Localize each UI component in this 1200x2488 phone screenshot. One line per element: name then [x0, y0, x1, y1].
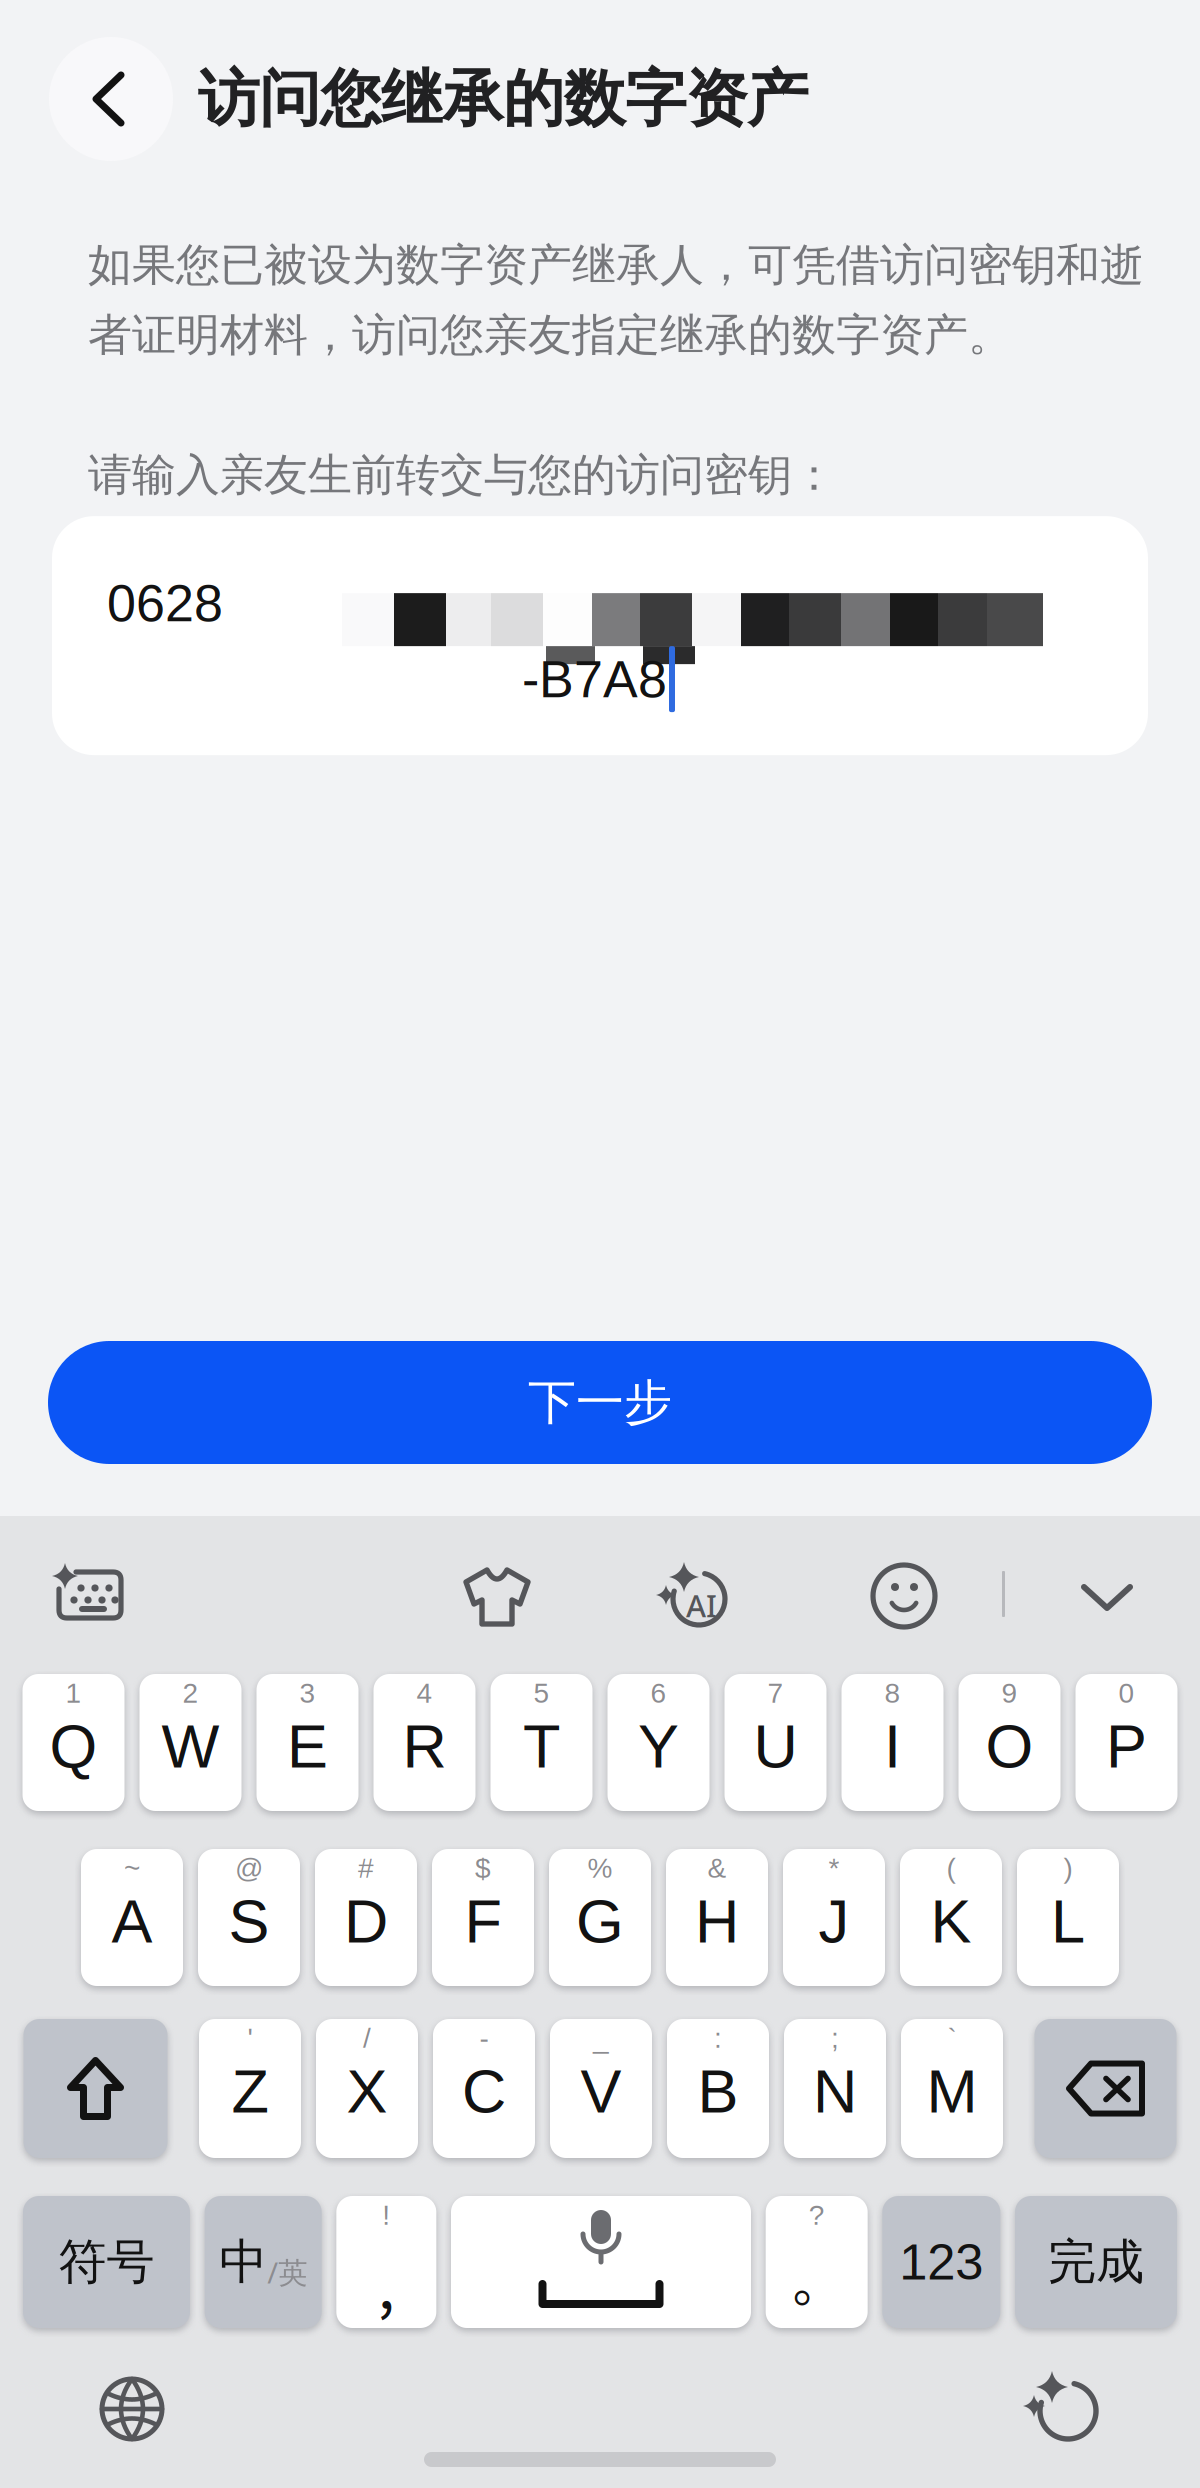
- staticText: !: [382, 2199, 390, 2231]
- button[interactable]: 返回: [49, 37, 173, 161]
- button[interactable]: `: [901, 2019, 1003, 2158]
- staticText: ;: [831, 2022, 839, 2054]
- button[interactable]: %: [549, 1849, 651, 1986]
- staticText: ,: [378, 2238, 395, 2326]
- button[interactable]: #: [315, 1849, 417, 1986]
- staticText: ': [247, 2022, 252, 2054]
- button[interactable]: 中英切换: [205, 2196, 322, 2328]
- staticText: $: [475, 1852, 491, 1884]
- button[interactable]: _: [550, 2019, 652, 2158]
- staticText: Q: [49, 1712, 97, 1780]
- button[interactable]: 8: [841, 1674, 943, 1811]
- staticText: 3: [299, 1677, 315, 1709]
- button[interactable]: 皮肤: [459, 1563, 535, 1629]
- button[interactable]: 4: [373, 1674, 475, 1811]
- staticText: 4: [416, 1677, 432, 1709]
- button[interactable]: !: [336, 2196, 436, 2328]
- staticText: ): [1063, 1852, 1072, 1884]
- button[interactable]: ): [1017, 1849, 1119, 1986]
- button[interactable]: ~: [81, 1849, 183, 1986]
- button[interactable]: 7: [724, 1674, 826, 1811]
- staticText: AI: [686, 1585, 717, 1626]
- button[interactable]: AI 助手: [1026, 2373, 1104, 2445]
- button[interactable]: *: [783, 1849, 885, 1986]
- button[interactable]: 收起键盘: [1074, 1563, 1140, 1625]
- button[interactable]: ;: [784, 2019, 886, 2158]
- staticText: Y: [638, 1712, 679, 1780]
- staticText: ?: [809, 2199, 825, 2231]
- staticText: K: [930, 1887, 971, 1955]
- staticText: 8: [884, 1677, 900, 1709]
- button[interactable]: 下一步: [48, 1341, 1152, 1464]
- staticText: 访问您继承的数字资产: [198, 61, 808, 137]
- staticText: F: [464, 1887, 501, 1955]
- staticText: 符号: [58, 2232, 154, 2291]
- staticText: A: [111, 1887, 152, 1955]
- button[interactable]: 6: [607, 1674, 709, 1811]
- staticText: S: [228, 1887, 269, 1955]
- button[interactable]: 表情: [870, 1563, 938, 1629]
- staticText: R: [402, 1712, 446, 1780]
- staticText: V: [580, 2057, 621, 2125]
- staticText: #: [358, 1852, 374, 1884]
- button[interactable]: /: [316, 2019, 418, 2158]
- button[interactable]: AI 助手: [655, 1563, 735, 1629]
- button[interactable]: 删除: [1034, 2019, 1176, 2158]
- staticText: Z: [231, 2057, 268, 2125]
- staticText: O: [985, 1712, 1033, 1780]
- button[interactable]: 0: [1075, 1674, 1177, 1811]
- button[interactable]: $: [432, 1849, 534, 1986]
- staticText: H: [695, 1887, 739, 1955]
- button[interactable]: (: [900, 1849, 1002, 1986]
- staticText: &: [707, 1852, 726, 1884]
- staticText: ~: [124, 1852, 140, 1884]
- staticText: /: [363, 2022, 371, 2054]
- button[interactable]: 9: [958, 1674, 1060, 1811]
- button[interactable]: 符号: [23, 2196, 190, 2328]
- button[interactable]: &: [666, 1849, 768, 1986]
- staticText: E: [287, 1712, 328, 1780]
- staticText: U: [753, 1712, 797, 1780]
- staticText: X: [346, 2057, 387, 2125]
- staticText: P: [1106, 1712, 1147, 1780]
- staticText: 0: [1118, 1677, 1134, 1709]
- button[interactable]: ?: [766, 2196, 868, 2328]
- button[interactable]: 空格: [451, 2196, 751, 2328]
- button[interactable]: Shift: [23, 2019, 167, 2158]
- staticText: 7: [767, 1677, 783, 1709]
- staticText: L: [1051, 1887, 1085, 1955]
- button[interactable]: @: [198, 1849, 300, 1986]
- staticText: G: [576, 1887, 624, 1955]
- staticText: 5: [533, 1677, 549, 1709]
- button[interactable]: :: [667, 2019, 769, 2158]
- button[interactable]: ': [199, 2019, 301, 2158]
- button[interactable]: 切换输入法: [96, 2373, 168, 2445]
- button[interactable]: 完成: [1015, 2196, 1177, 2328]
- button[interactable]: 2: [139, 1674, 241, 1811]
- button[interactable]: 访问密钥输入框: [52, 516, 1148, 755]
- staticText: W: [161, 1712, 219, 1780]
- button[interactable]: 1: [22, 1674, 124, 1811]
- staticText: -B7A8: [522, 650, 667, 708]
- staticText: 6: [650, 1677, 666, 1709]
- staticText: 如果您已被设为数字资产继承人，可凭借访问密钥和逝者证明材料，访问您亲友指定继承的…: [88, 238, 1144, 362]
- staticText: 2: [182, 1677, 198, 1709]
- staticText: J: [818, 1887, 849, 1955]
- staticText: :: [714, 2022, 722, 2054]
- button[interactable]: 3: [256, 1674, 358, 1811]
- staticText: N: [813, 2057, 857, 2125]
- button[interactable]: 5: [490, 1674, 592, 1811]
- staticText: D: [344, 1887, 388, 1955]
- button[interactable]: 123: [882, 2196, 1000, 2328]
- staticText: `: [947, 2022, 956, 2054]
- staticText: 9: [1001, 1677, 1017, 1709]
- staticText: %: [587, 1852, 612, 1884]
- button[interactable]: -: [433, 2019, 535, 2158]
- staticText: 中: [219, 2232, 267, 2291]
- staticText: /英: [267, 2252, 307, 2291]
- staticText: _: [593, 2022, 609, 2054]
- button[interactable]: AI 键盘: [51, 1563, 129, 1625]
- staticText: @: [235, 1852, 263, 1884]
- staticText: 完成: [1048, 2232, 1144, 2291]
- staticText: T: [523, 1712, 560, 1780]
